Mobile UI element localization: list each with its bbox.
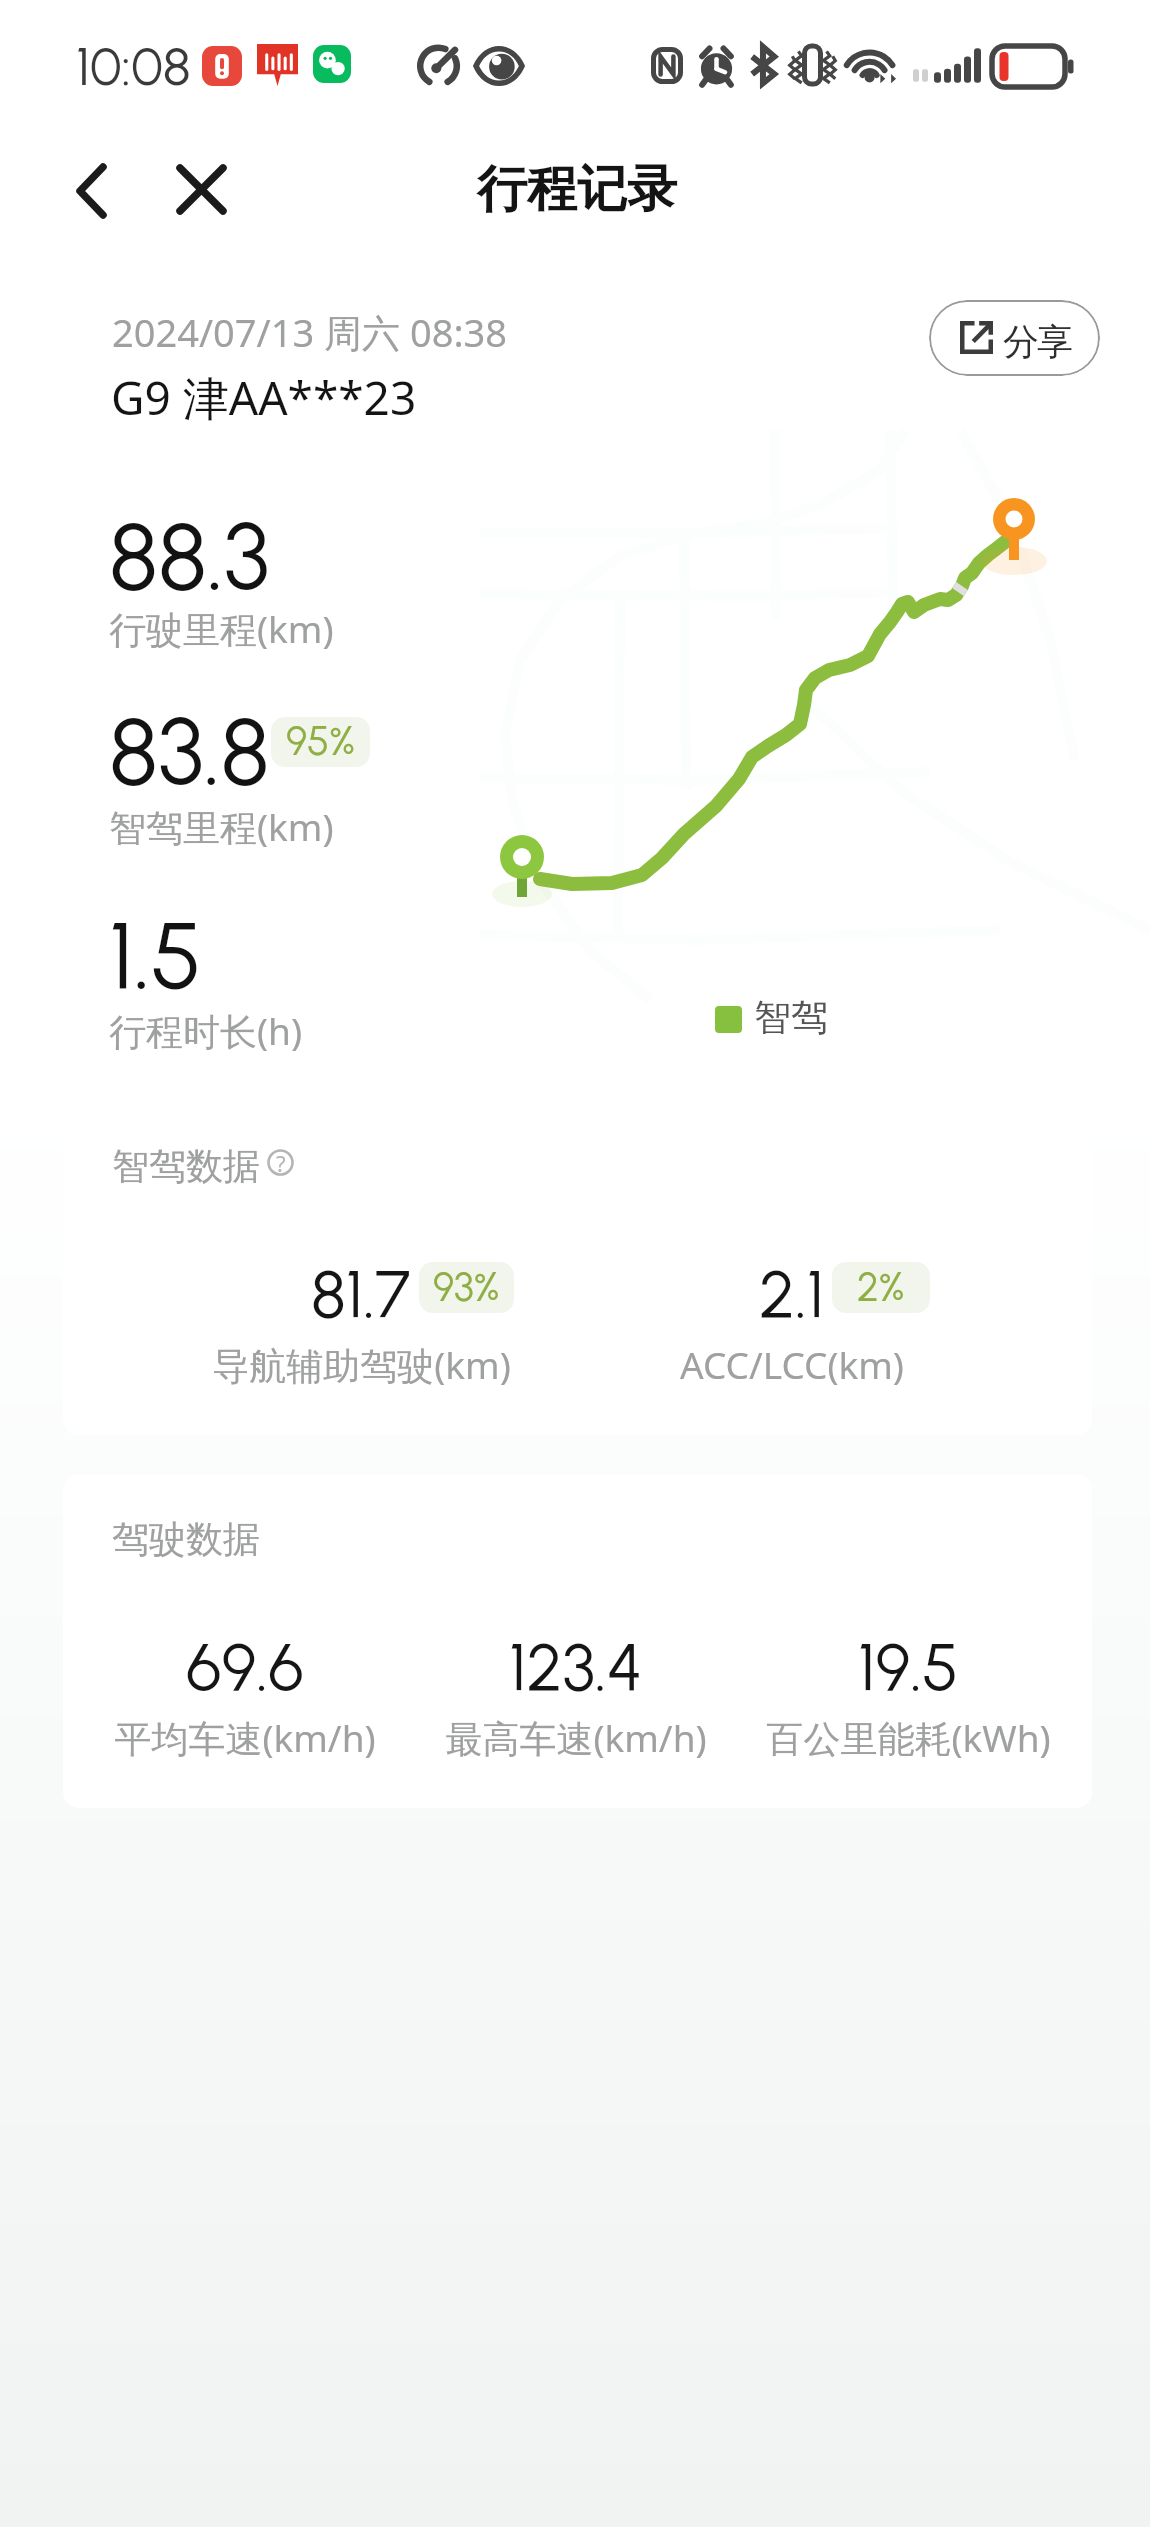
staticText: 智驾 — [754, 994, 828, 1041]
button[interactable]: Close — [156, 144, 246, 234]
staticText: 88.3 — [109, 501, 270, 613]
staticText: 69.6 — [186, 1627, 304, 1706]
staticText: 2% — [857, 1263, 905, 1311]
staticText: 驾驶数据 — [112, 1516, 260, 1563]
staticText: 行程时长(h) — [109, 1005, 303, 1056]
staticText: 95% — [286, 717, 355, 765]
staticText: 行程记录 — [477, 158, 677, 221]
staticText: 83.8 — [109, 696, 270, 808]
staticText: 2024/07/13 周六 08:38 — [112, 306, 508, 358]
staticText: G9 津AA***23 — [111, 366, 417, 429]
staticText: 19.5 — [858, 1627, 959, 1706]
staticText: 智驾里程(km) — [109, 801, 334, 852]
staticText: 2.1 — [759, 1254, 825, 1333]
staticText: 导航辅助驾驶(km) — [212, 1339, 511, 1390]
button[interactable]: Help — [267, 1149, 294, 1176]
button[interactable]: 分享 — [929, 300, 1100, 376]
staticText: ? — [276, 1148, 286, 1175]
staticText: 81.7 — [311, 1254, 411, 1333]
staticText: 行驶里程(km) — [109, 603, 334, 654]
staticText: 93% — [433, 1263, 500, 1311]
button[interactable]: Back — [46, 146, 136, 236]
staticText: 分享 — [1004, 319, 1072, 364]
staticText: 10:08 — [76, 35, 191, 99]
staticText: 平均车速(km/h) — [114, 1712, 376, 1763]
staticText: 1.5 — [109, 900, 202, 1012]
staticText: 123.4 — [509, 1627, 643, 1706]
staticText: 最高车速(km/h) — [445, 1712, 707, 1763]
staticText: 智驾数据 — [112, 1143, 260, 1190]
staticText: 百公里能耗(kWh) — [766, 1712, 1051, 1763]
staticText: ACC/LCC(km) — [680, 1339, 904, 1389]
